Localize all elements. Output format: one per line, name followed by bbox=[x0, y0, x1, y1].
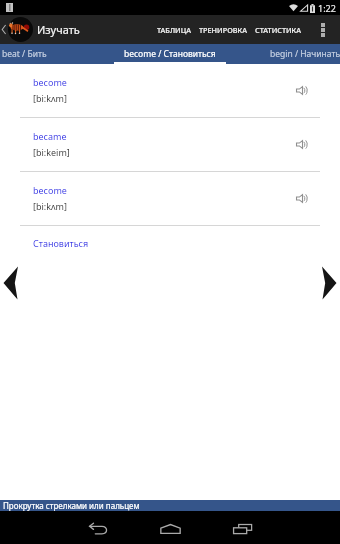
button[interactable]: Home bbox=[134, 512, 206, 544]
staticText: begin / Начинать bbox=[270, 48, 340, 60]
button[interactable]: become / Становиться bbox=[124, 48, 216, 60]
staticText: [bi:kʌm] bbox=[33, 92, 67, 104]
button[interactable]: beat / Бить bbox=[0, 48, 50, 60]
staticText: Изучать bbox=[37, 22, 80, 37]
button[interactable]: became bbox=[0, 118, 340, 172]
staticText: ТРЕНИРОВКА bbox=[199, 25, 247, 35]
button[interactable]: begin / Начинать bbox=[267, 48, 340, 60]
button[interactable]: More options bbox=[306, 15, 340, 44]
staticText: ТАБЛИЦА bbox=[157, 25, 191, 35]
staticText: [bi:kʌm] bbox=[33, 200, 67, 212]
staticText: Прокрутка стрелками или пальцем bbox=[3, 500, 140, 511]
button[interactable]: Recent apps bbox=[206, 512, 278, 544]
staticText: become / Становиться bbox=[124, 48, 216, 60]
staticText: become bbox=[33, 76, 67, 88]
staticText: СТАТИСТИКА bbox=[255, 25, 302, 35]
button[interactable]: Play pronunciation bbox=[293, 81, 311, 99]
button[interactable]: Play pronunciation bbox=[293, 189, 311, 207]
staticText: beat / Бить bbox=[2, 48, 47, 60]
button[interactable]: Navigate up bbox=[0, 15, 8, 44]
button[interactable]: Back bbox=[62, 512, 134, 544]
staticText: Становиться bbox=[33, 237, 89, 249]
button[interactable]: become bbox=[0, 172, 340, 226]
button[interactable]: Previous word bbox=[0, 265, 22, 301]
button[interactable]: Next word bbox=[318, 265, 340, 301]
button[interactable]: Play pronunciation bbox=[293, 135, 311, 153]
staticText: 1:22 bbox=[318, 2, 336, 14]
button[interactable]: become bbox=[0, 64, 340, 118]
staticText: become bbox=[33, 184, 67, 196]
staticText: [bi:keim] bbox=[33, 146, 70, 158]
button[interactable]: Становиться bbox=[0, 226, 340, 262]
button[interactable]: ТРЕНИРОВКА bbox=[195, 15, 251, 44]
button[interactable]: ТАБЛИЦА bbox=[153, 15, 195, 44]
staticText: became bbox=[33, 130, 67, 142]
button[interactable]: СТАТИСТИКА bbox=[251, 15, 306, 44]
